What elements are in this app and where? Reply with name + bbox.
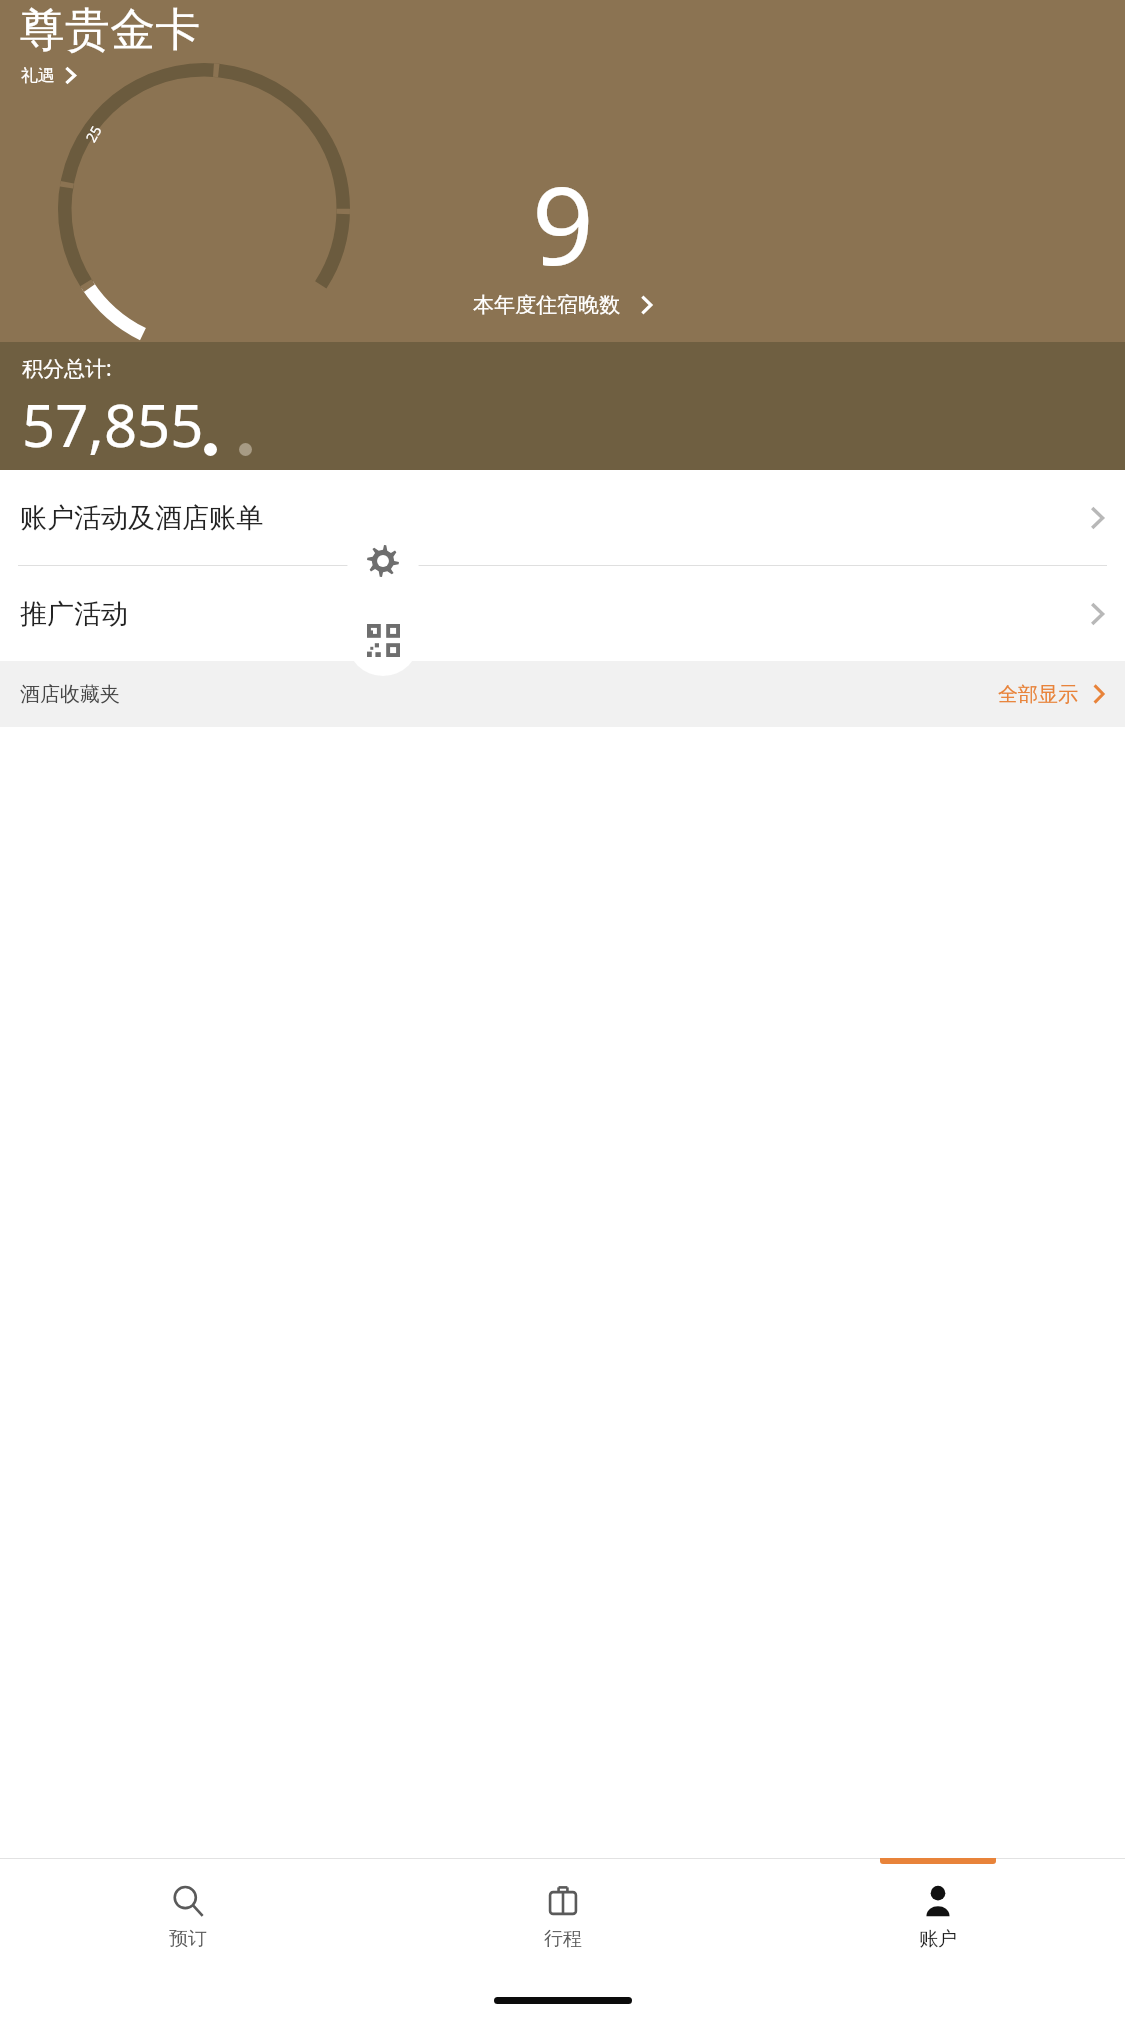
button[interactable]: Settings bbox=[347, 525, 419, 597]
staticText: 全部显示 bbox=[998, 682, 1078, 707]
button[interactable]: 酒店收藏夹 bbox=[0, 661, 1125, 727]
staticText: 酒店收藏夹 bbox=[20, 682, 998, 707]
staticText: 9 bbox=[532, 150, 594, 270]
button[interactable]: 行程 bbox=[375, 1858, 750, 1976]
button[interactable]: 推广活动 bbox=[0, 566, 1125, 661]
staticText: 57,855 bbox=[22, 385, 204, 464]
staticText: 积分总计: bbox=[22, 354, 112, 383]
button[interactable]: 礼遇 bbox=[21, 63, 85, 88]
staticText: 行程 bbox=[544, 1927, 582, 1951]
button[interactable]: 本年度住宿晚数 bbox=[463, 288, 663, 322]
button[interactable]: Scan QR code bbox=[347, 604, 419, 676]
button[interactable]: 账户活动及酒店账单 bbox=[0, 470, 1125, 565]
staticText: 尊贵金卡 bbox=[20, 2, 200, 59]
staticText: 25 bbox=[81, 121, 106, 145]
staticText: 账户 bbox=[919, 1927, 957, 1951]
staticText: 本年度住宿晚数 bbox=[473, 292, 620, 318]
button[interactable]: 账户 bbox=[750, 1858, 1125, 1976]
staticText: 推广活动 bbox=[20, 597, 1089, 631]
staticText: 预订 bbox=[169, 1927, 207, 1951]
staticText: 账户活动及酒店账单 bbox=[20, 501, 1089, 535]
staticText: 礼遇 bbox=[21, 65, 55, 86]
button[interactable]: 预订 bbox=[0, 1858, 375, 1976]
